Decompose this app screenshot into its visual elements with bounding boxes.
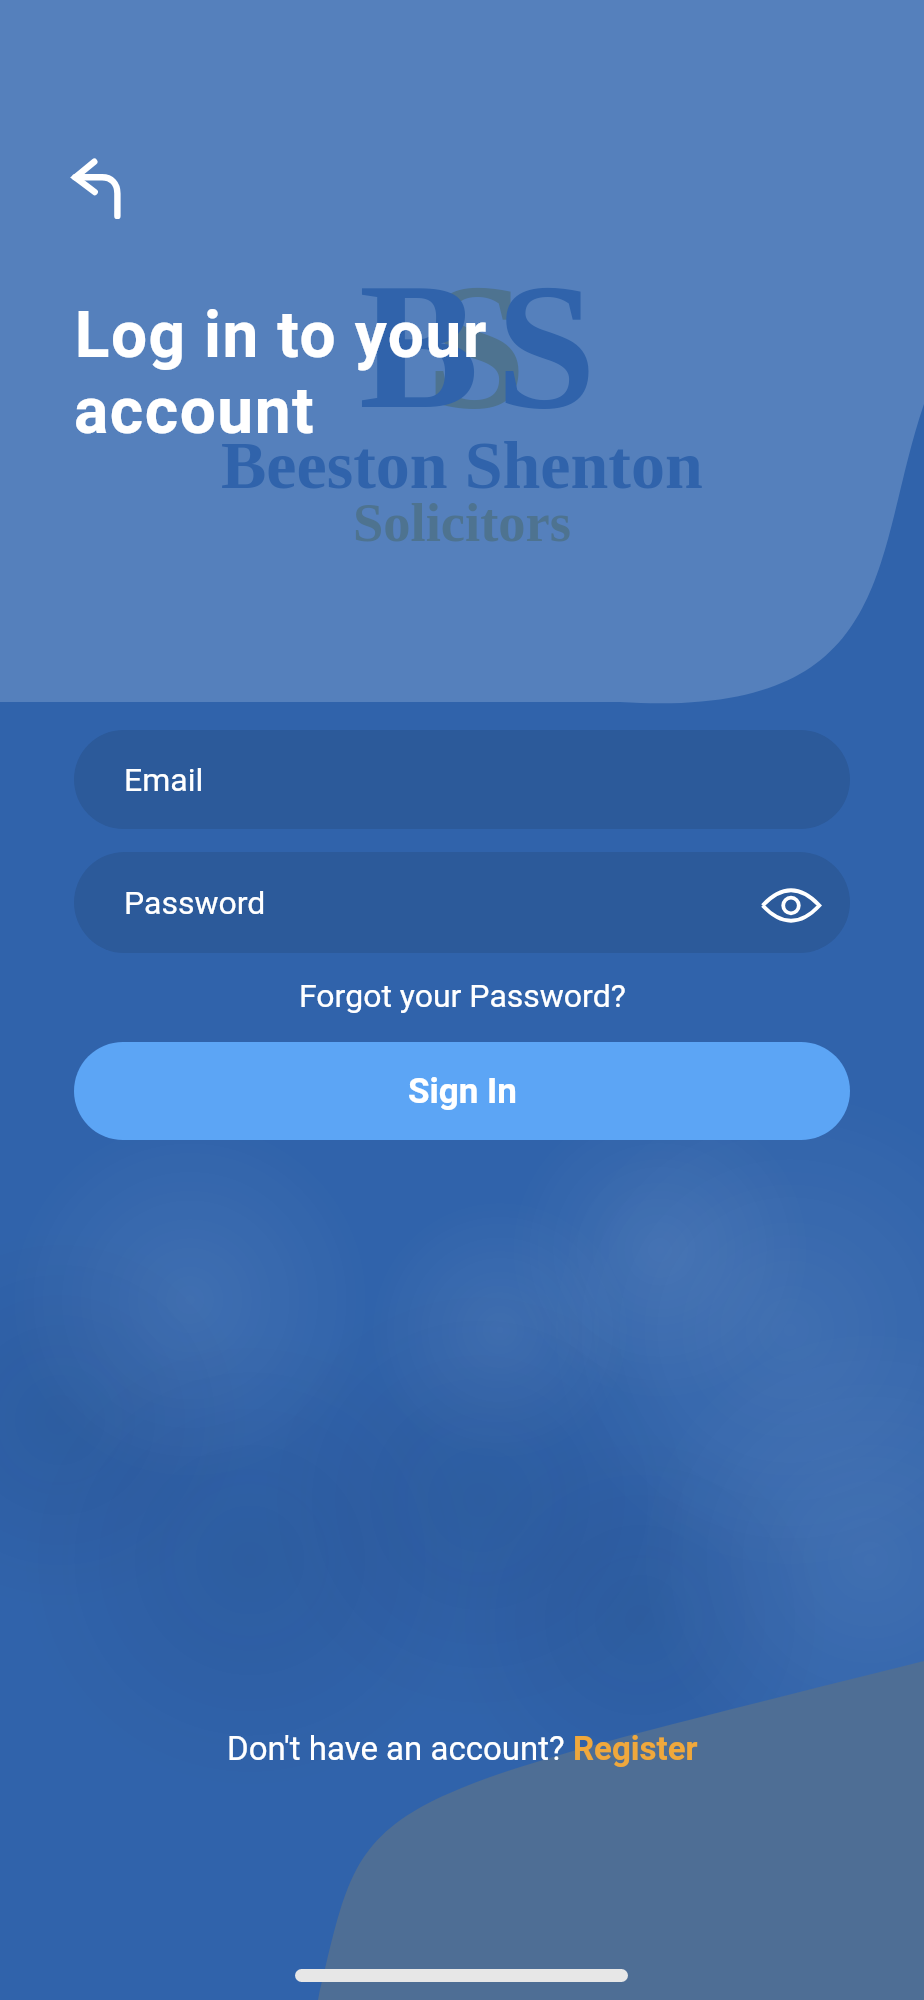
staticText: Register — [573, 1729, 698, 1768]
button[interactable]: Email — [74, 730, 850, 829]
staticText: Don't have an account? — [227, 1729, 573, 1768]
staticText: Log in to your account — [74, 298, 487, 449]
staticText: Forgot your Password? — [299, 977, 626, 1015]
button[interactable]: Show password — [759, 871, 823, 935]
staticText: Sign In — [408, 1071, 517, 1112]
button[interactable]: Password — [74, 852, 850, 953]
staticText: Email — [124, 761, 204, 799]
staticText: S — [426, 247, 527, 446]
button[interactable]: Sign In — [74, 1042, 850, 1140]
staticText: Password — [124, 884, 266, 922]
button[interactable]: Back — [54, 142, 142, 230]
staticText: S — [496, 247, 597, 446]
staticText: Solicitors — [353, 492, 571, 552]
button[interactable]: Register — [573, 1725, 698, 1771]
staticText: B — [359, 247, 480, 446]
button[interactable]: Forgot your Password? — [283, 970, 642, 1022]
staticText: Beeston Shenton — [221, 427, 703, 502]
